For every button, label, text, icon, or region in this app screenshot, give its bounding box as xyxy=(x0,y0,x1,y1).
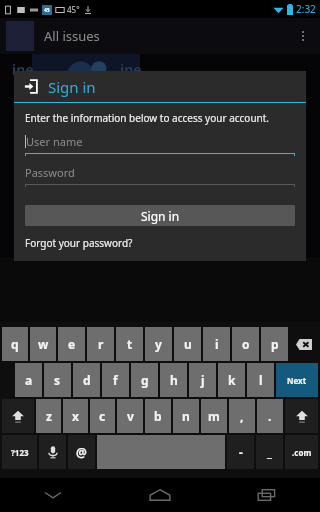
button[interactable]: Sign in xyxy=(25,205,295,226)
button[interactable]: Shift xyxy=(285,399,318,433)
button[interactable]: Recent apps xyxy=(213,478,320,512)
button[interactable]: e xyxy=(58,327,85,361)
button[interactable]: Voice input xyxy=(39,435,66,469)
staticText: p xyxy=(271,336,279,352)
button[interactable]: r xyxy=(87,327,114,361)
button[interactable]: p xyxy=(261,327,288,361)
button[interactable]: z xyxy=(36,399,61,433)
staticText: a xyxy=(25,372,33,388)
staticText: . xyxy=(268,408,272,424)
button[interactable]: q xyxy=(2,327,28,361)
button[interactable]: More options xyxy=(296,25,310,47)
staticText: u xyxy=(184,336,192,352)
staticText: Sign in xyxy=(48,77,96,97)
staticText: i xyxy=(215,336,219,352)
staticText: Enter the information below to access yo… xyxy=(25,111,270,125)
button[interactable]: ?123 xyxy=(2,435,37,469)
button[interactable]: - xyxy=(227,435,254,469)
staticText: , xyxy=(240,408,244,424)
staticText: - xyxy=(239,444,243,460)
staticText: Password xyxy=(25,165,75,180)
staticText: w xyxy=(38,336,49,352)
button[interactable]: @ xyxy=(68,435,95,469)
button[interactable]: f xyxy=(102,363,129,397)
staticText: ine xyxy=(120,60,142,79)
button[interactable]: l xyxy=(247,363,274,397)
button[interactable]: , xyxy=(229,399,255,433)
button[interactable]: _ xyxy=(256,435,283,469)
staticText: y xyxy=(155,336,162,352)
staticText: b xyxy=(154,408,162,424)
button[interactable]: k xyxy=(218,363,245,397)
staticText: x xyxy=(72,408,79,424)
staticText: d xyxy=(83,372,91,388)
button[interactable]: s xyxy=(44,363,71,397)
button[interactable]: g xyxy=(131,363,158,397)
button[interactable]: v xyxy=(117,399,143,433)
staticText: h xyxy=(170,372,178,388)
staticText: l xyxy=(259,372,263,388)
staticText: .com xyxy=(292,447,312,458)
button[interactable]: Next xyxy=(276,363,318,397)
staticText: q xyxy=(11,336,19,352)
button[interactable]: w xyxy=(30,327,56,361)
staticText: 45 xyxy=(44,7,50,14)
staticText: ine xyxy=(12,60,34,79)
staticText: 45° xyxy=(67,4,80,15)
button[interactable]: Password xyxy=(25,165,295,187)
staticText: Next xyxy=(287,375,307,386)
staticText: @ xyxy=(76,444,87,460)
button[interactable]: Home xyxy=(106,478,213,512)
button[interactable]: a xyxy=(15,363,42,397)
button[interactable]: y xyxy=(145,327,172,361)
staticText: ?123 xyxy=(11,447,29,458)
staticText: All issues xyxy=(44,27,100,45)
staticText: c xyxy=(99,408,106,424)
button[interactable]: .com xyxy=(285,435,318,469)
button[interactable]: o xyxy=(232,327,259,361)
staticText: j xyxy=(201,372,205,388)
staticText: v xyxy=(127,408,134,424)
staticText: k xyxy=(228,372,236,388)
button[interactable]: Delete xyxy=(290,327,318,361)
button[interactable]: Shift xyxy=(2,399,34,433)
button[interactable]: b xyxy=(145,399,171,433)
button[interactable]: Hide keyboard xyxy=(0,478,106,512)
button[interactable]: x xyxy=(63,399,88,433)
button[interactable]: h xyxy=(160,363,187,397)
button[interactable]: User name xyxy=(25,134,295,156)
button[interactable]: i xyxy=(203,327,230,361)
staticText: o xyxy=(242,336,250,352)
staticText: r xyxy=(98,336,104,352)
staticText: m xyxy=(208,408,220,424)
staticText: User name xyxy=(26,134,83,149)
button[interactable]: t xyxy=(116,327,143,361)
staticText: e xyxy=(68,336,76,352)
button[interactable]: d xyxy=(73,363,100,397)
staticText: 2:32 xyxy=(296,2,316,16)
button[interactable]: u xyxy=(174,327,201,361)
staticText: Forgot your password? xyxy=(25,236,133,250)
button[interactable]: . xyxy=(257,399,283,433)
button[interactable]: m xyxy=(201,399,227,433)
button[interactable]: n xyxy=(173,399,199,433)
staticText: g xyxy=(141,372,149,388)
staticText: n xyxy=(182,408,190,424)
staticText: _ xyxy=(267,444,272,460)
staticText: Sign in xyxy=(141,208,180,224)
staticText: z xyxy=(46,408,52,424)
staticText: f xyxy=(113,372,118,388)
button[interactable]: c xyxy=(90,399,115,433)
staticText: s xyxy=(54,372,61,388)
button[interactable]: j xyxy=(189,363,216,397)
staticText: t xyxy=(127,336,133,352)
button[interactable]: Forgot your password? xyxy=(25,236,133,250)
